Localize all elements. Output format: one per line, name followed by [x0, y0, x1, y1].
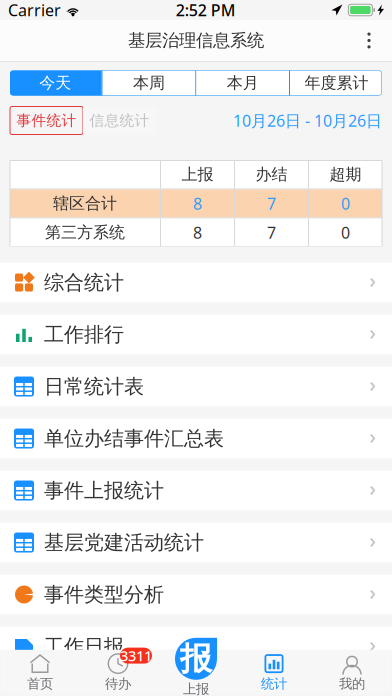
- staticText: 2:52 PM: [176, 0, 236, 21]
- staticText: 7: [267, 222, 276, 243]
- staticText: 超期: [329, 165, 361, 184]
- button[interactable]: 10月26日 - 10月26日: [233, 106, 382, 134]
- staticText: 7: [267, 193, 276, 214]
- button[interactable]: 本周: [103, 70, 195, 95]
- button[interactable]: 日常统计表: [0, 366, 392, 406]
- staticText: 事件类型分析: [44, 582, 164, 607]
- button[interactable]: 信息统计: [83, 106, 156, 134]
- staticText: 10月26日 - 10月26日: [233, 110, 382, 131]
- staticText: 首页: [27, 676, 53, 692]
- staticText: 我的: [339, 676, 365, 692]
- staticText: 工作排行: [44, 322, 124, 347]
- staticText: 8: [193, 222, 202, 243]
- staticText: 本月: [227, 73, 259, 93]
- button[interactable]: 基层党建活动统计: [0, 522, 392, 562]
- button[interactable]: 事件上报统计: [0, 470, 392, 510]
- button[interactable]: 单位办结事件汇总表: [0, 418, 392, 458]
- button[interactable]: 工作排行: [0, 314, 392, 354]
- staticText: 综合统计: [44, 270, 124, 295]
- button[interactable]: 本月: [196, 70, 289, 95]
- staticText: 待办: [105, 676, 131, 692]
- button[interactable]: 今天: [9, 70, 102, 95]
- button[interactable]: 工作日报: [0, 626, 392, 666]
- staticText: 上报: [183, 681, 209, 696]
- staticText: 辖区合计: [53, 194, 117, 213]
- staticText: 0: [341, 193, 350, 214]
- button[interactable]: 统计: [235, 650, 313, 695]
- staticText: 办结: [255, 165, 287, 184]
- button[interactable]: 首页: [1, 650, 79, 695]
- staticText: 统计: [261, 676, 287, 692]
- staticText: 工作日报: [44, 634, 124, 659]
- staticText: 事件上报统计: [44, 478, 164, 503]
- staticText: 单位办结事件汇总表: [44, 426, 224, 451]
- button[interactable]: 3311: [79, 650, 157, 695]
- staticText: 信息统计: [89, 111, 149, 129]
- button[interactable]: 事件统计: [10, 106, 83, 134]
- staticText: 今天: [39, 73, 71, 93]
- button[interactable]: 年度累计: [290, 70, 383, 95]
- staticText: 日常统计表: [44, 374, 144, 399]
- staticText: 8: [193, 193, 202, 214]
- staticText: 年度累计: [304, 73, 368, 93]
- button[interactable]: 综合统计: [0, 262, 392, 302]
- staticText: 基层治理信息系统: [128, 30, 264, 51]
- staticText: 第三方系统: [45, 223, 125, 242]
- staticText: 0: [341, 222, 350, 243]
- staticText: 基层党建活动统计: [44, 530, 204, 555]
- staticText: 上报: [181, 165, 213, 184]
- staticText: Carrier: [8, 0, 61, 21]
- button[interactable]: 我的: [313, 650, 391, 695]
- button[interactable]: More options: [354, 20, 384, 60]
- staticText: 报: [180, 639, 212, 678]
- staticText: 3311: [120, 646, 152, 665]
- staticText: 事件统计: [16, 111, 76, 129]
- button[interactable]: 事件类型分析: [0, 574, 392, 614]
- staticText: 本周: [133, 73, 165, 93]
